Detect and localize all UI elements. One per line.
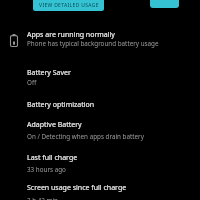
button[interactable] [150, 0, 179, 8]
staticText: Phone has typical background battery usa… [27, 39, 159, 48]
staticText: Screen usage since full charge [27, 183, 127, 193]
button[interactable]: Apps are running normally [0, 20, 200, 58]
button[interactable]: Battery Saver [0, 58, 200, 93]
button[interactable]: Battery optimization [0, 93, 200, 115]
staticText: 33 hours ago [27, 165, 66, 174]
staticText: Off [27, 78, 37, 87]
button[interactable]: VIEW DETAILED USAGE [33, 0, 104, 11]
staticText: On / Detecting when apps drain battery [27, 132, 144, 141]
staticText: Adaptive Battery [27, 120, 82, 130]
staticText: VIEW DETAILED USAGE [39, 2, 99, 9]
button[interactable]: Screen usage since full charge [0, 179, 200, 200]
button[interactable]: Adaptive Battery [0, 115, 200, 147]
button[interactable]: Last full charge [0, 147, 200, 179]
staticText: 3 h 43 min [27, 196, 59, 200]
staticText: Battery Saver [27, 68, 71, 78]
staticText: Battery optimization [27, 100, 95, 110]
staticText: Last full charge [27, 153, 78, 163]
staticText: Apps are running normally [27, 30, 115, 40]
